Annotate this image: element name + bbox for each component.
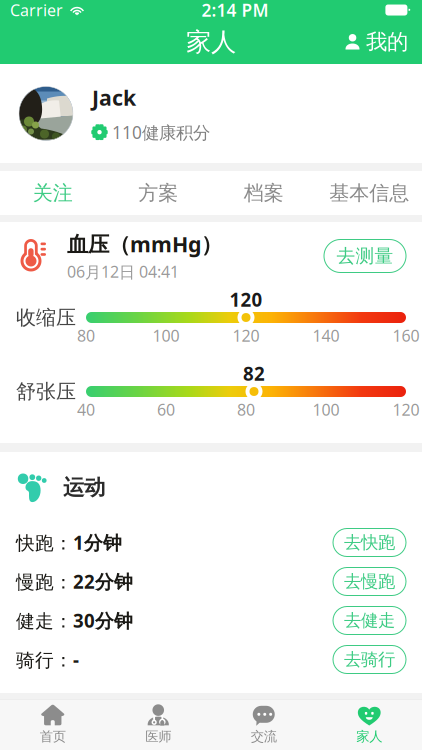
staticText: 收缩压 bbox=[16, 305, 76, 330]
staticText: 医师 bbox=[145, 728, 171, 745]
staticText: 去快跑 bbox=[344, 532, 395, 553]
staticText: 家人 bbox=[356, 728, 382, 745]
button[interactable]: 医师 bbox=[105, 699, 211, 750]
staticText: 2:14 PM bbox=[201, 0, 268, 21]
staticText: 120 bbox=[392, 399, 419, 420]
staticText: 血压（mmHg） bbox=[67, 230, 222, 258]
staticText: 慢跑：22分钟 bbox=[16, 569, 133, 594]
button[interactable]: 关注 bbox=[0, 171, 105, 215]
staticText: 120 bbox=[229, 287, 262, 312]
staticText: 交流 bbox=[251, 728, 277, 745]
button[interactable]: 去健走 bbox=[333, 606, 406, 634]
staticText: 160 bbox=[392, 325, 419, 346]
button[interactable]: 首页 bbox=[0, 699, 105, 750]
button[interactable]: 交流 bbox=[211, 699, 316, 750]
staticText: 基本信息 bbox=[329, 181, 409, 205]
staticText: 140 bbox=[312, 325, 339, 346]
staticText: 100 bbox=[312, 399, 339, 420]
staticText: 方案 bbox=[138, 181, 178, 205]
button[interactable]: 去快跑 bbox=[333, 528, 406, 556]
staticText: 去骑行 bbox=[344, 649, 395, 670]
button[interactable]: 去测量 bbox=[324, 239, 406, 272]
button[interactable]: 档案 bbox=[211, 171, 316, 215]
staticText: 去健走 bbox=[344, 610, 395, 631]
staticText: 骑行：- bbox=[16, 647, 79, 672]
staticText: 100 bbox=[152, 325, 179, 346]
staticText: 去测量 bbox=[336, 244, 393, 267]
button[interactable]: 去骑行 bbox=[333, 645, 406, 673]
staticText: 60 bbox=[157, 399, 175, 420]
staticText: Carrier bbox=[10, 0, 63, 21]
button[interactable]: Jack bbox=[0, 64, 422, 163]
staticText: 快跑：1分钟 bbox=[16, 530, 122, 555]
staticText: 首页 bbox=[40, 728, 66, 745]
staticText: 80 bbox=[77, 325, 95, 346]
staticText: 档案 bbox=[244, 181, 284, 205]
staticText: 舒张压 bbox=[16, 379, 76, 404]
staticText: 06月12日 04:41 bbox=[67, 261, 179, 282]
button[interactable]: 我的 bbox=[330, 20, 422, 64]
button[interactable]: 基本信息 bbox=[316, 171, 422, 215]
staticText: 去慢跑 bbox=[344, 571, 395, 592]
button[interactable]: 去慢跑 bbox=[333, 567, 406, 595]
staticText: Jack bbox=[92, 83, 136, 112]
staticText: 110健康积分 bbox=[112, 121, 210, 144]
staticText: 运动 bbox=[63, 474, 105, 501]
staticText: 健走：30分钟 bbox=[16, 608, 133, 633]
button[interactable]: 家人 bbox=[316, 699, 422, 750]
staticText: 40 bbox=[77, 399, 95, 420]
staticText: 家人 bbox=[186, 26, 236, 57]
staticText: 关注 bbox=[33, 181, 73, 205]
staticText: 82 bbox=[243, 361, 265, 386]
button[interactable]: 方案 bbox=[105, 171, 211, 215]
staticText: 120 bbox=[232, 325, 259, 346]
staticText: 80 bbox=[237, 399, 255, 420]
staticText: 我的 bbox=[366, 29, 408, 55]
